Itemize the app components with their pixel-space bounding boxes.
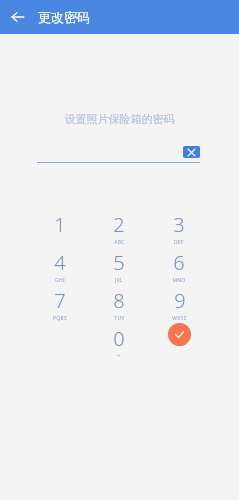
staticText: MNO <box>172 277 186 284</box>
staticText: 9 <box>174 287 186 314</box>
staticText: TUV <box>114 315 125 322</box>
staticText: WXYZ <box>172 315 187 322</box>
staticText: 5 <box>113 249 125 276</box>
staticText: 4 <box>54 249 66 276</box>
button[interactable]: 2 <box>89 209 149 247</box>
staticText: PQRS <box>53 315 67 322</box>
button[interactable]: 5 <box>89 247 149 285</box>
staticText: + <box>117 353 121 360</box>
button[interactable]: 4 <box>30 247 89 285</box>
staticText: JKL <box>115 277 123 284</box>
button[interactable]: 1 <box>30 209 89 247</box>
staticText: 0 <box>113 325 125 352</box>
staticText: 8 <box>113 287 125 314</box>
button[interactable]: Backspace <box>183 146 200 158</box>
staticText: ABC <box>114 239 125 246</box>
staticText: 更改密码 <box>38 9 90 25</box>
button[interactable]: 0 <box>89 323 149 361</box>
staticText: 3 <box>173 211 185 238</box>
staticText: GHI <box>55 277 65 284</box>
staticText: 7 <box>54 287 66 314</box>
button[interactable]: 9 <box>149 285 209 323</box>
button[interactable]: Back <box>6 5 30 29</box>
button[interactable]: 6 <box>149 247 209 285</box>
staticText: DEF <box>174 239 184 246</box>
staticText: 1 <box>54 211 66 238</box>
button[interactable]: 7 <box>30 285 89 323</box>
button[interactable]: 8 <box>89 285 149 323</box>
button[interactable]: 3 <box>149 209 209 247</box>
staticText: 2 <box>113 211 125 238</box>
button[interactable]: Confirm <box>168 323 191 346</box>
staticText: 设置照片保险箱的密码 <box>0 112 239 126</box>
staticText: 6 <box>173 249 185 276</box>
